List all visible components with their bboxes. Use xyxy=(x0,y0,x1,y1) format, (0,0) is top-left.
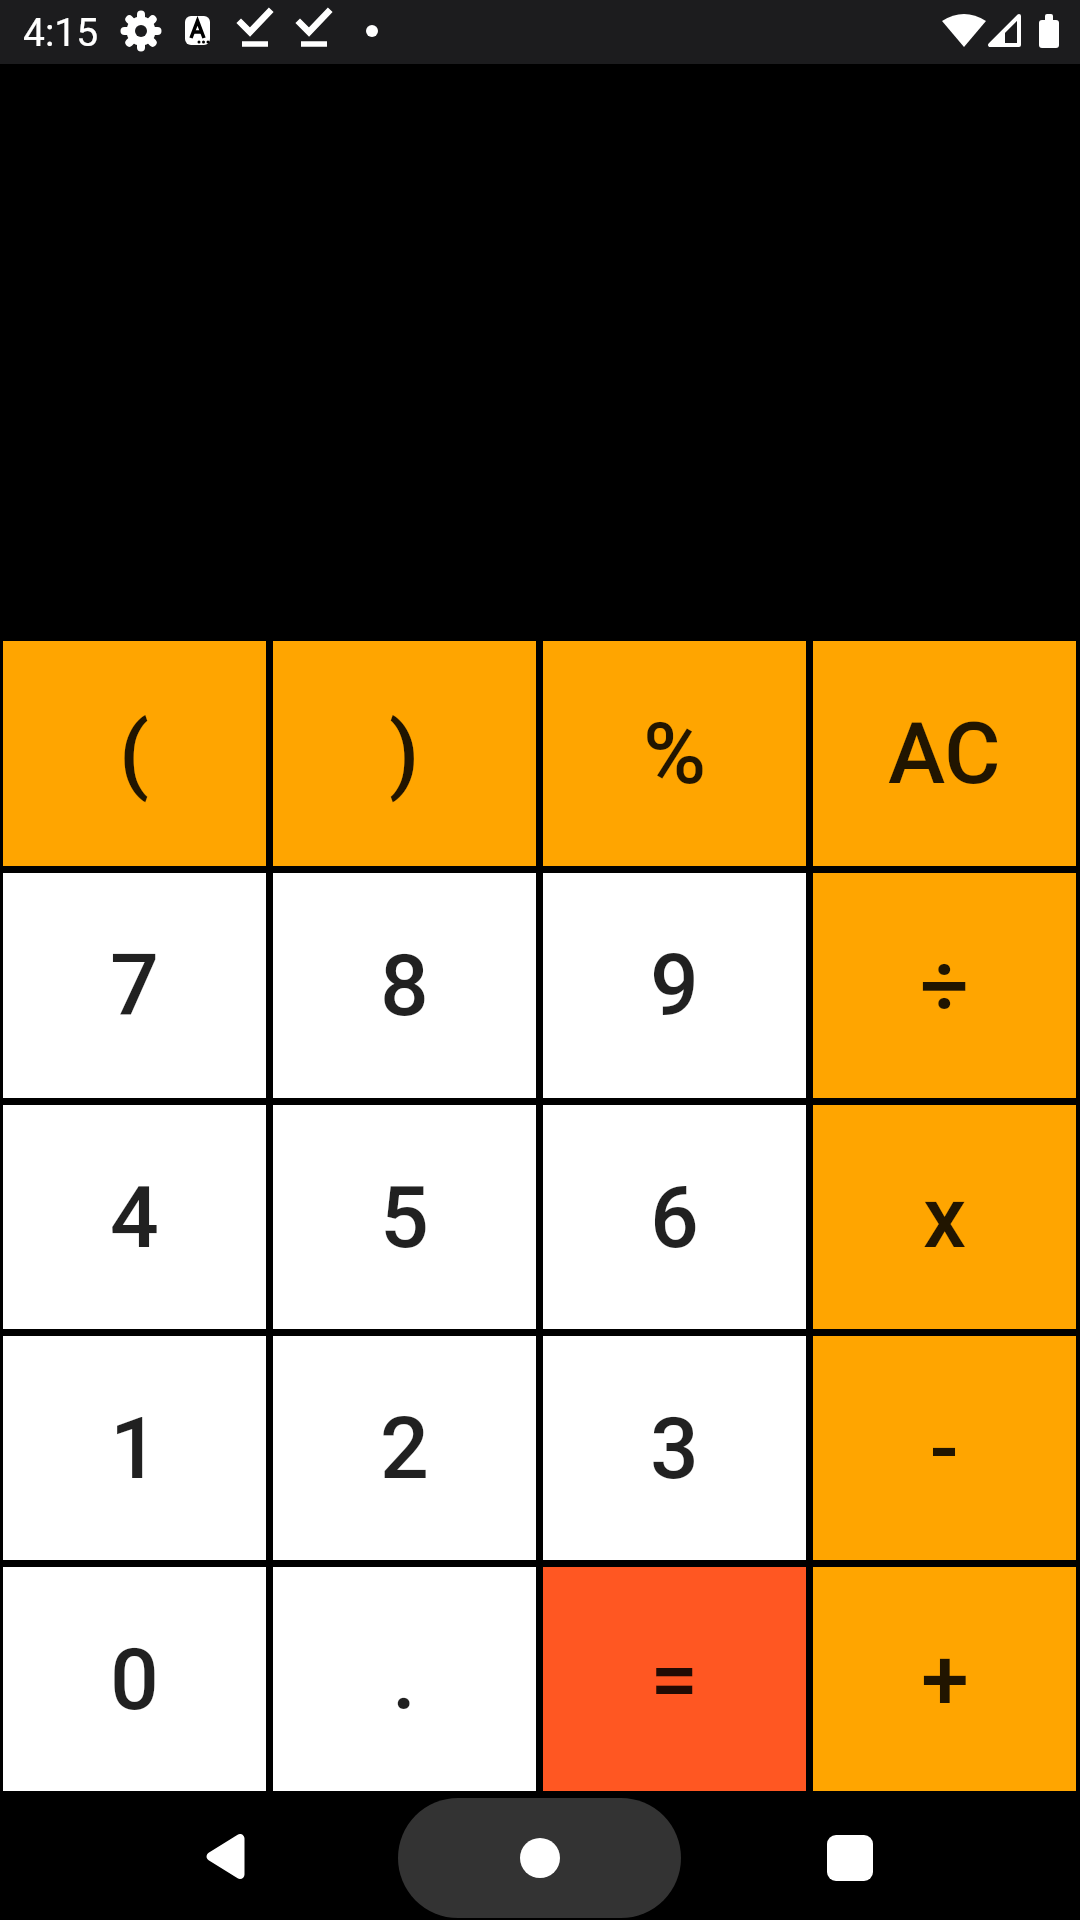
staticText: ÷ xyxy=(920,935,970,1036)
staticText: = xyxy=(650,1629,699,1730)
button[interactable]: 7 xyxy=(3,873,266,1098)
button[interactable]: 8 xyxy=(273,873,536,1098)
button[interactable] xyxy=(802,1810,898,1906)
button[interactable]: 2 xyxy=(273,1336,536,1560)
button[interactable]: ÷ xyxy=(813,873,1076,1098)
staticText: 7 xyxy=(110,935,159,1036)
staticText: ) xyxy=(389,703,420,804)
button[interactable]: AC xyxy=(813,641,1076,866)
button[interactable]: % xyxy=(543,641,806,866)
staticText: x xyxy=(923,1167,967,1268)
staticText: 9 xyxy=(650,935,699,1036)
button[interactable]: . xyxy=(273,1567,536,1791)
staticText: . xyxy=(392,1629,417,1730)
staticText: 6 xyxy=(650,1167,699,1268)
button[interactable]: x xyxy=(813,1105,1076,1329)
staticText: 4:15 xyxy=(23,10,99,56)
button[interactable]: 1 xyxy=(3,1336,266,1560)
staticText: AC xyxy=(888,703,1001,804)
button[interactable]: - xyxy=(813,1336,1076,1560)
staticText: - xyxy=(930,1398,959,1499)
button[interactable]: + xyxy=(813,1567,1076,1791)
staticText: 1 xyxy=(110,1398,159,1499)
staticText: 4 xyxy=(110,1167,159,1268)
staticText: 8 xyxy=(380,935,429,1036)
staticText: + xyxy=(921,1629,969,1730)
button[interactable]: 4 xyxy=(3,1105,266,1329)
button[interactable]: 0 xyxy=(3,1567,266,1791)
staticText: 3 xyxy=(650,1398,699,1499)
staticText: ( xyxy=(119,703,150,804)
staticText: 0 xyxy=(110,1629,159,1730)
button[interactable] xyxy=(177,1808,273,1904)
button[interactable]: = xyxy=(543,1567,806,1791)
button[interactable] xyxy=(398,1798,681,1918)
button[interactable]: 6 xyxy=(543,1105,806,1329)
staticText: 5 xyxy=(380,1167,429,1268)
button[interactable]: 5 xyxy=(273,1105,536,1329)
staticText: % xyxy=(643,703,707,804)
button[interactable]: ( xyxy=(3,641,266,866)
button[interactable]: ) xyxy=(273,641,536,866)
staticText: 2 xyxy=(380,1398,429,1499)
button[interactable]: 9 xyxy=(543,873,806,1098)
button[interactable]: 3 xyxy=(543,1336,806,1560)
